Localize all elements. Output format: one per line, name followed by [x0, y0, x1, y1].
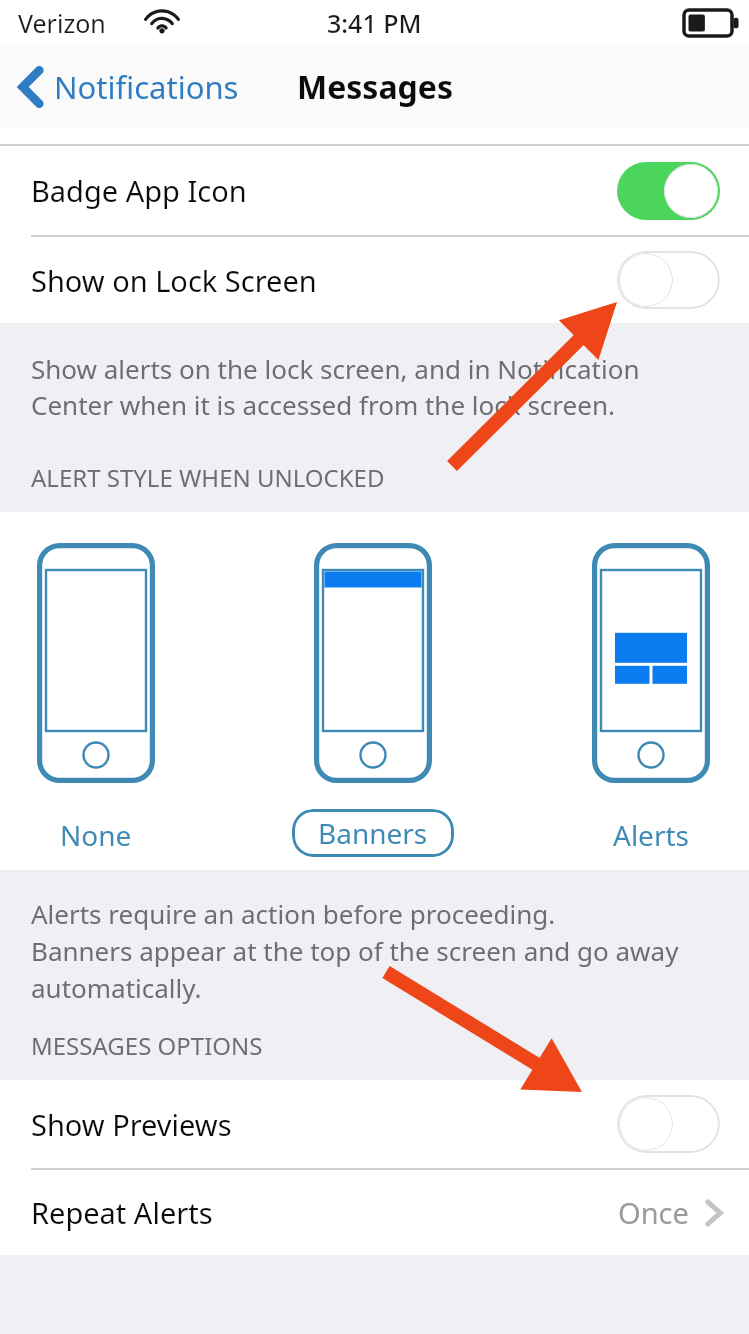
button[interactable]: Notifications [12, 60, 245, 114]
staticText: MESSAGES OPTIONS [31, 1029, 263, 1062]
staticText: Messages [297, 65, 453, 109]
button[interactable]: Show Previews [0, 1080, 749, 1168]
staticText: Show Previews [31, 1105, 232, 1144]
button[interactable]: None [34, 543, 158, 861]
button[interactable]: Alerts [587, 543, 715, 861]
staticText: Repeat Alerts [31, 1193, 213, 1232]
button[interactable]: Repeat Alerts [0, 1170, 749, 1255]
staticText: Banners [318, 814, 428, 852]
button[interactable]: Show on Lock Screen [0, 237, 749, 323]
button[interactable]: Badge App Icon [0, 146, 749, 235]
staticText: Once [618, 1193, 689, 1232]
staticText: Badge App Icon [31, 171, 247, 210]
staticText: ALERT STYLE WHEN UNLOCKED [31, 461, 385, 494]
button[interactable]: Badge App Icon toggle [617, 162, 720, 220]
staticText: None [60, 816, 132, 854]
staticText: Notifications [54, 66, 239, 108]
staticText: Alerts require an action before proceedi… [31, 896, 707, 1006]
staticText: Show alerts on the lock screen, and in N… [31, 351, 715, 423]
button[interactable]: Show on Lock Screen toggle [617, 251, 720, 309]
staticText: Verizon [18, 6, 106, 40]
button[interactable]: Show Previews toggle [617, 1095, 720, 1153]
button[interactable]: Banners [292, 543, 454, 857]
staticText: Alerts [613, 816, 689, 854]
staticText: 3:41 PM [327, 6, 422, 40]
staticText: Show on Lock Screen [31, 261, 317, 300]
